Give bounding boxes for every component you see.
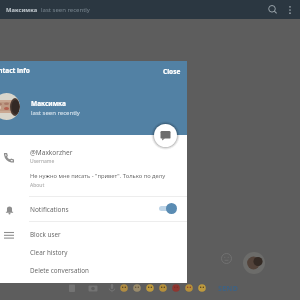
staticText: Contact info [0, 66, 30, 75]
button[interactable]: Search [263, 0, 282, 19]
staticText: Clear history [30, 248, 68, 257]
button[interactable]: @Maxkorzher [0, 145, 187, 171]
staticText: Delete conversation [30, 266, 90, 275]
button[interactable]: Emoji [172, 284, 180, 292]
button[interactable]: Voice message [106, 282, 118, 294]
button[interactable]: Emoji [120, 284, 128, 292]
staticText: @Maxkorzher [30, 148, 73, 157]
button[interactable]: Block user [0, 225, 187, 243]
button[interactable]: Notifications [0, 197, 187, 221]
button[interactable]: Send message [154, 124, 177, 147]
staticText: last seen recently [31, 109, 80, 117]
button[interactable]: Emoji [146, 284, 154, 292]
button[interactable]: Не нужно мне писать - "привет". Только п… [0, 169, 187, 193]
staticText: About [30, 182, 45, 189]
button[interactable]: Emoji [185, 284, 193, 292]
staticText: Не нужно мне писать - "привет". Только п… [30, 172, 166, 180]
staticText: Максимка [6, 6, 38, 14]
staticText: Username [30, 158, 55, 165]
button[interactable]: Camera [87, 282, 99, 294]
button[interactable]: Emoji [133, 284, 141, 292]
button[interactable]: Delete conversation [0, 261, 187, 279]
button[interactable]: More options [282, 2, 298, 18]
staticText: Notifications [30, 205, 69, 214]
staticText: Максимка [31, 99, 66, 108]
button[interactable]: Attach file [66, 282, 78, 294]
button[interactable]: Close [155, 62, 189, 81]
staticText: SEND [218, 283, 238, 293]
staticText: Close [163, 67, 181, 76]
button[interactable]: Emoji [198, 284, 206, 292]
staticText: Block user [30, 230, 61, 239]
button[interactable]: Emoji [159, 284, 167, 292]
button[interactable]: Clear history [0, 243, 187, 261]
staticText: last seen recently [41, 6, 90, 14]
button[interactable]: Emoji [221, 253, 232, 264]
